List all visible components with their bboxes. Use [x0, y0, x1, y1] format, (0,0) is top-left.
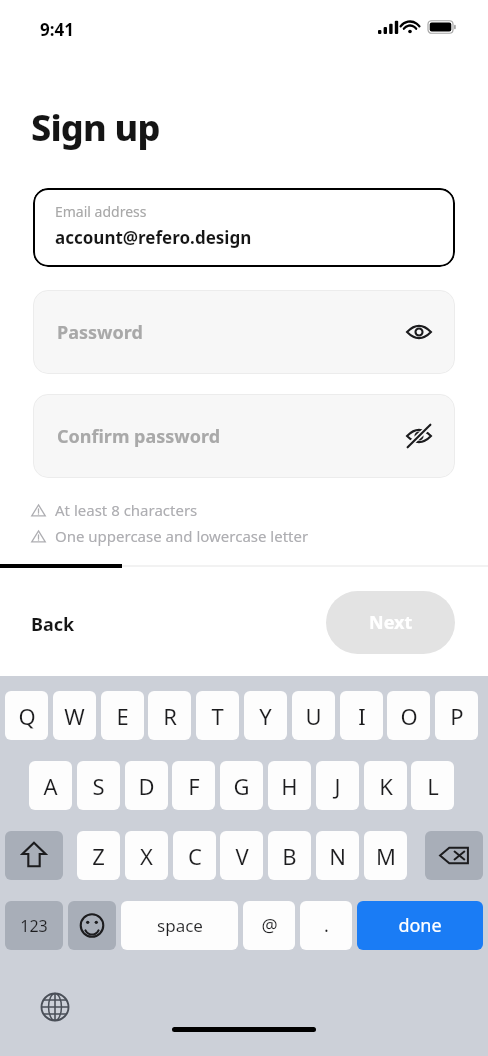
staticText: R [163, 701, 177, 731]
staticText: L [427, 771, 439, 801]
button[interactable]: W [53, 691, 96, 740]
button[interactable]: L [411, 761, 454, 810]
button[interactable]: M [364, 831, 407, 880]
staticText: C [188, 841, 202, 871]
staticText: Password [57, 320, 143, 345]
staticText: . [324, 913, 329, 938]
button[interactable]: done [357, 901, 483, 950]
staticText: E [116, 701, 129, 731]
button[interactable]: Shift [5, 831, 63, 880]
staticText: M [376, 841, 396, 871]
button[interactable]: U [292, 691, 335, 740]
button[interactable]: Q [5, 691, 48, 740]
staticText: account@refero.design [55, 226, 252, 249]
staticText: I [358, 701, 366, 731]
button[interactable]: P [435, 691, 478, 740]
staticText: O [400, 701, 418, 731]
button[interactable]: Back [20, 600, 86, 649]
button[interactable]: K [364, 761, 407, 810]
button[interactable]: V [220, 831, 263, 880]
button[interactable]: Password [33, 290, 455, 374]
staticText: K [379, 771, 393, 801]
button[interactable]: Change keyboard language [33, 985, 77, 1029]
staticText: N [329, 841, 346, 871]
staticText: B [282, 841, 297, 871]
staticText: Y [259, 701, 272, 731]
staticText: 9:41 [40, 18, 74, 41]
button[interactable]: T [196, 691, 239, 740]
button[interactable]: S [77, 761, 120, 810]
staticText: Sign up [31, 103, 160, 152]
button[interactable]: G [220, 761, 263, 810]
staticText: U [305, 701, 322, 731]
staticText: V [235, 841, 249, 871]
button[interactable]: . [300, 901, 352, 950]
staticText: F [188, 771, 200, 801]
button[interactable]: Y [244, 691, 287, 740]
button[interactable]: H [268, 761, 311, 810]
staticText: G [233, 771, 250, 801]
button[interactable]: O [387, 691, 430, 740]
button[interactable]: E [101, 691, 144, 740]
staticText: Email address [55, 202, 147, 221]
button[interactable]: Confirm password [33, 394, 455, 478]
button[interactable]: Show password [397, 310, 441, 354]
staticText: Q [18, 701, 36, 731]
staticText: S [92, 771, 105, 801]
staticText: Back [31, 612, 75, 637]
staticText: J [334, 771, 341, 801]
staticText: 123 [20, 915, 48, 937]
button[interactable]: F [172, 761, 215, 810]
button[interactable]: Backspace [425, 831, 483, 880]
staticText: X [140, 841, 153, 871]
staticText: D [138, 771, 155, 801]
button[interactable]: Z [77, 831, 120, 880]
button[interactable]: N [316, 831, 359, 880]
button[interactable]: X [125, 831, 168, 880]
button[interactable]: R [148, 691, 191, 740]
staticText: space [157, 914, 203, 937]
staticText: Next [369, 610, 413, 635]
staticText: H [281, 771, 298, 801]
staticText: T [211, 701, 224, 731]
button[interactable]: B [268, 831, 311, 880]
button[interactable]: @ [243, 901, 295, 950]
button[interactable]: Emoji [68, 901, 116, 950]
button[interactable]: C [173, 831, 216, 880]
staticText: W [64, 701, 85, 731]
button[interactable]: Hide password [397, 414, 441, 458]
staticText: At least 8 characters [55, 500, 198, 520]
staticText: Confirm password [57, 424, 221, 449]
button[interactable]: J [316, 761, 359, 810]
staticText: @ [261, 913, 278, 938]
button[interactable]: Next [326, 591, 455, 654]
staticText: A [43, 771, 58, 801]
staticText: P [450, 701, 464, 731]
staticText: Z [92, 841, 105, 871]
button[interactable]: Email address [33, 188, 455, 267]
button[interactable]: D [125, 761, 168, 810]
button[interactable]: A [29, 761, 72, 810]
staticText: done [398, 913, 442, 938]
button[interactable]: 123 [5, 901, 63, 950]
button[interactable]: space [121, 901, 238, 950]
button[interactable]: I [340, 691, 383, 740]
staticText: One uppercase and lowercase letter [55, 526, 309, 546]
